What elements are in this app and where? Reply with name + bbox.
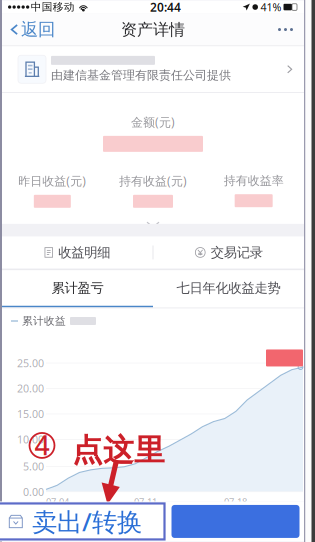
- button[interactable]: 交易记录: [153, 236, 304, 268]
- staticText: 金额(元): [131, 114, 175, 130]
- staticText: 返回: [21, 19, 55, 40]
- staticText: 25.00: [17, 356, 44, 370]
- staticText: 10.00: [17, 432, 44, 447]
- staticText: 累计收益: [22, 314, 66, 327]
- staticText: 卖出/转换: [32, 505, 142, 538]
- staticText: 交易记录: [211, 244, 263, 261]
- staticText: 0.00: [23, 485, 44, 499]
- staticText: 07-18: [224, 495, 247, 508]
- button[interactable]: 七日年化收益走势: [153, 270, 304, 307]
- staticText: 昨日收益(元): [18, 173, 86, 189]
- button[interactable]: 由建信基金管理有限责任公司提供: [2, 46, 304, 92]
- staticText: 由建信基金管理有限责任公司提供: [51, 68, 231, 83]
- staticText: 点这里: [72, 431, 165, 469]
- button[interactable]: Buy: [171, 505, 299, 538]
- staticText: 累计盈亏: [51, 280, 103, 296]
- staticText: 七日年化收益走势: [176, 280, 280, 296]
- staticText: 持有收益率: [224, 173, 284, 188]
- staticText: 中国移动: [31, 0, 75, 14]
- staticText: 5.00: [23, 459, 44, 474]
- button[interactable]: More options: [267, 14, 304, 46]
- staticText: 15.00: [17, 407, 44, 421]
- button[interactable]: 返回: [2, 14, 63, 46]
- staticText: 20:44: [150, 0, 181, 15]
- staticText: 07-04: [46, 495, 69, 508]
- staticText: 41%: [260, 0, 281, 14]
- staticText: 收益明细: [58, 244, 110, 261]
- button[interactable]: 收益明细: [2, 236, 152, 268]
- staticText: 资产详情: [121, 20, 185, 39]
- button[interactable]: Expand details: [2, 216, 304, 234]
- staticText: 07-11: [134, 495, 157, 508]
- button[interactable]: 卖出/转换: [0, 503, 164, 539]
- button[interactable]: 累计盈亏: [2, 270, 153, 307]
- staticText: 20.00: [17, 381, 44, 396]
- staticText: 4: [34, 427, 49, 463]
- staticText: 持有收益(元): [119, 173, 187, 189]
